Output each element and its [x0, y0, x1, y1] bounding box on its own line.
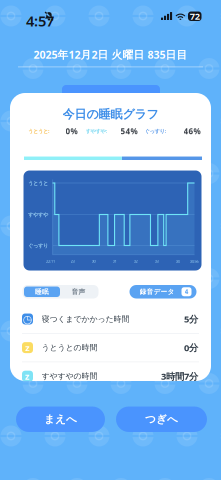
staticText: 46%	[183, 126, 200, 136]
button[interactable]: z	[10, 334, 211, 362]
staticText: 録音データ	[139, 288, 174, 296]
staticText: ぐっすり:	[144, 127, 165, 135]
button[interactable]: つぎへ	[116, 406, 207, 432]
staticText: 睡眠	[35, 288, 49, 296]
staticText: つぎへ	[145, 413, 178, 426]
staticText: 4:57	[26, 11, 54, 30]
staticText: 23	[70, 258, 74, 264]
button[interactable]: 録音データ	[129, 285, 196, 298]
staticText: z	[25, 341, 30, 354]
staticText: 00	[91, 258, 95, 264]
staticText: 54%	[120, 126, 137, 136]
staticText: z	[25, 370, 30, 382]
staticText: 音声	[71, 288, 85, 296]
staticText: 04	[175, 258, 179, 264]
staticText: 22:11	[46, 258, 55, 264]
staticText: 4	[184, 287, 188, 296]
staticText: 04:56	[189, 258, 198, 264]
staticText: ぐっすり	[28, 242, 48, 249]
staticText: すやすや:	[85, 127, 106, 135]
staticText: 3時間7分	[161, 370, 198, 382]
staticText: 今日の睡眠グラフ	[62, 107, 158, 122]
staticText: うとうと:	[28, 127, 49, 135]
staticText: 02	[133, 258, 137, 264]
staticText: すやすやの時間	[41, 371, 97, 381]
staticText: 2025年12月2日 火曜日 835日目	[33, 47, 187, 62]
staticText: 寝つくまでかかった時間	[41, 314, 129, 324]
staticText: 5分	[184, 313, 198, 325]
staticText: 03	[154, 258, 158, 264]
staticText: すやすや	[28, 211, 48, 218]
button[interactable]: 睡眠	[24, 286, 60, 297]
staticText: 0分	[184, 341, 198, 354]
staticText: 01	[112, 258, 116, 264]
button[interactable]: まえへ	[16, 406, 105, 432]
staticText: 72	[190, 10, 200, 22]
button[interactable]: ◷	[10, 305, 211, 333]
staticText: 0%	[65, 126, 77, 136]
staticText: うとうと	[28, 180, 48, 187]
button[interactable]: 音声	[60, 286, 97, 297]
staticText: ◷	[23, 313, 32, 325]
button[interactable]: z	[10, 362, 211, 390]
staticText: まえへ	[44, 413, 77, 426]
staticText: うとうとの時間	[41, 343, 97, 352]
